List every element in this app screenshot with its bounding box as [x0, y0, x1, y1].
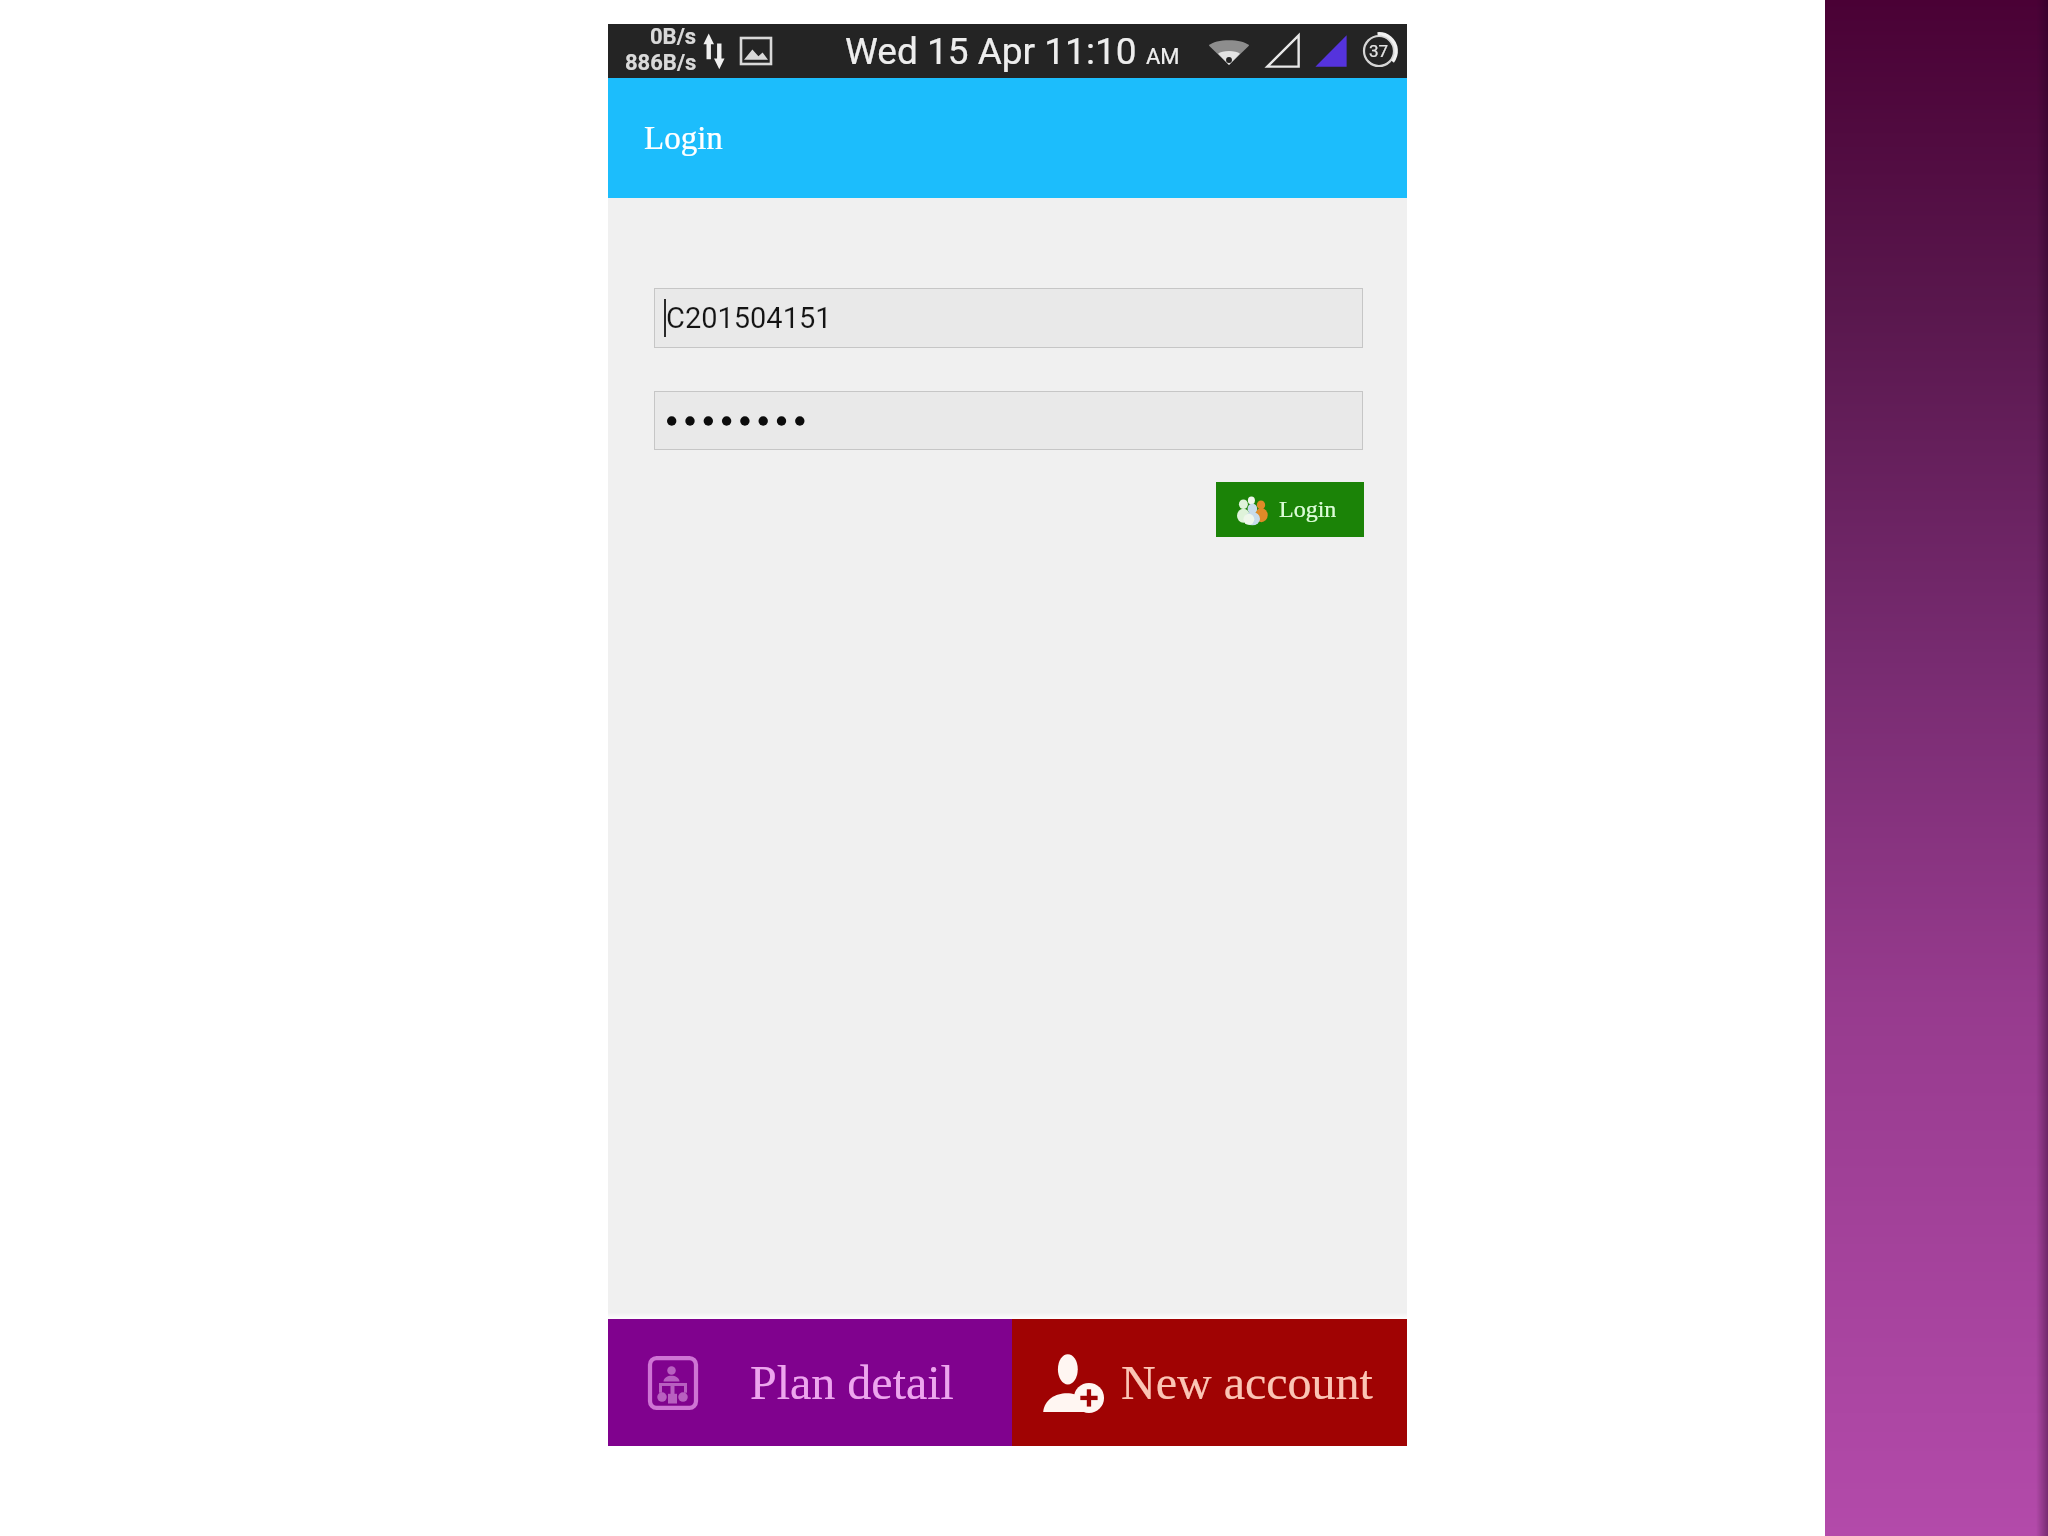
other: Mobile signal SIM 1	[1266, 34, 1300, 68]
other: Network traffic	[703, 32, 725, 70]
staticText: Login	[644, 120, 723, 157]
staticText: 37	[1369, 41, 1389, 61]
other: Mobile signal SIM 2	[1314, 34, 1348, 68]
button[interactable]: C201504151	[654, 288, 1363, 348]
staticText: Wed 15 Apr 11:10	[845, 30, 1146, 73]
button[interactable]: New account	[1012, 1319, 1407, 1446]
button[interactable]: Login	[1216, 482, 1364, 537]
staticText: AM	[1146, 44, 1180, 70]
button[interactable]: Plan detail	[608, 1319, 1012, 1446]
staticText: 886B/s	[625, 50, 697, 76]
other: Wi-Fi	[1208, 37, 1250, 65]
staticText: Login	[1279, 496, 1337, 523]
other: Battery 37 percent	[1361, 33, 1397, 69]
staticText: C201504151	[666, 301, 832, 335]
button[interactable]	[654, 391, 1363, 450]
staticText: New account	[1121, 1356, 1373, 1409]
other: Screenshot saved	[741, 38, 771, 64]
staticText: Plan detail	[750, 1356, 954, 1409]
staticText: 0B/s	[650, 24, 697, 50]
